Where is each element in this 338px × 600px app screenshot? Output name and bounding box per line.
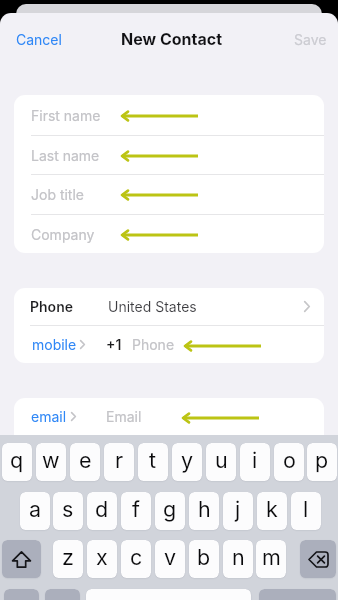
staticText: mobile — [32, 336, 77, 353]
staticText: i — [252, 447, 258, 473]
button[interactable]: l — [291, 492, 321, 530]
button[interactable]: g — [155, 492, 185, 530]
staticText: k — [266, 496, 278, 522]
staticText: email — [31, 408, 67, 425]
staticText: United States — [108, 298, 197, 315]
staticText: c — [130, 544, 143, 570]
staticText: y — [181, 447, 194, 473]
button[interactable]: f — [121, 492, 151, 530]
staticText: f — [132, 496, 140, 522]
staticText: e — [79, 447, 92, 473]
button[interactable]: Phone — [14, 288, 324, 325]
button[interactable]: j — [223, 492, 253, 530]
staticText: v — [164, 544, 177, 570]
button[interactable]: return — [259, 589, 336, 600]
staticText: r — [115, 447, 124, 473]
button[interactable]: a — [20, 492, 50, 530]
button[interactable]: q — [2, 443, 32, 481]
button[interactable]: v — [155, 540, 185, 578]
button[interactable]: i — [240, 443, 270, 481]
staticText: First name — [31, 107, 101, 124]
staticText: Job title — [31, 186, 84, 203]
staticText: Save — [294, 31, 327, 48]
button[interactable]: Cancel — [8, 25, 70, 54]
button[interactable]: y — [172, 443, 202, 481]
staticText: z — [62, 544, 74, 570]
button[interactable]: k — [257, 492, 287, 530]
button[interactable]: m — [256, 540, 286, 578]
staticText: Phone — [132, 336, 175, 353]
staticText: n — [232, 544, 245, 570]
button[interactable]: h — [189, 492, 219, 530]
staticText: h — [198, 496, 211, 522]
button[interactable]: c — [121, 540, 151, 578]
staticText: Email — [106, 408, 142, 425]
button[interactable]: Job title — [14, 174, 324, 214]
button[interactable]: p — [307, 443, 337, 481]
staticText: +1 — [106, 336, 122, 353]
staticText: x — [96, 544, 108, 570]
button[interactable]: First name — [14, 95, 324, 135]
staticText: j — [235, 496, 241, 522]
staticText: New Contact — [121, 29, 223, 48]
staticText: p — [315, 447, 329, 473]
staticText: o — [283, 447, 296, 473]
staticText: a — [29, 496, 42, 522]
button[interactable]: Last name — [14, 135, 324, 175]
button[interactable]: e — [70, 443, 100, 481]
staticText: Phone — [30, 298, 73, 315]
button[interactable]: n — [223, 540, 253, 578]
staticText: m — [262, 544, 281, 570]
button[interactable]: r — [104, 443, 134, 481]
button[interactable]: b — [189, 540, 219, 578]
button[interactable]: mobile — [14, 326, 324, 363]
staticText: Company — [31, 226, 95, 243]
staticText: u — [215, 447, 228, 473]
button[interactable]: w — [36, 443, 66, 481]
button[interactable]: Backspace — [300, 540, 336, 578]
button[interactable]: o — [274, 443, 304, 481]
button[interactable]: Emoji — [45, 589, 80, 600]
staticText: Cancel — [16, 31, 62, 48]
button[interactable]: s — [53, 492, 83, 530]
button[interactable]: space — [86, 589, 251, 600]
staticText: s — [62, 496, 74, 522]
button[interactable]: x — [87, 540, 117, 578]
button[interactable]: t — [138, 443, 168, 481]
staticText: w — [42, 447, 60, 473]
button[interactable]: Numbers — [4, 589, 39, 600]
staticText: t — [149, 447, 157, 473]
staticText: Last name — [31, 147, 100, 164]
button[interactable]: Company — [14, 214, 324, 253]
button[interactable]: u — [206, 443, 236, 481]
staticText: b — [197, 544, 211, 570]
button[interactable]: email — [14, 398, 324, 435]
button[interactable]: d — [87, 492, 117, 530]
staticText: g — [163, 496, 177, 522]
staticText: l — [303, 496, 309, 522]
button[interactable]: z — [53, 540, 83, 578]
staticText: q — [10, 447, 24, 473]
staticText: d — [95, 496, 109, 522]
button[interactable]: Shift — [2, 540, 41, 578]
button[interactable]: Save — [286, 25, 335, 54]
